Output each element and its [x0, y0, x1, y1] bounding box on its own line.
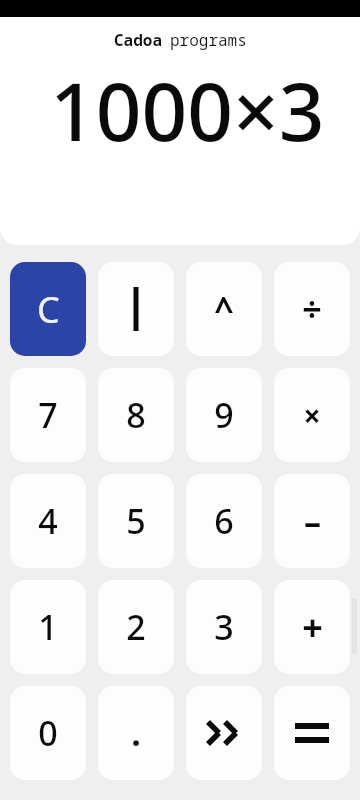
- button[interactable]: Power: [186, 262, 262, 356]
- button[interactable]: Move cursor right: [186, 686, 262, 780]
- button[interactable]: 8: [98, 368, 174, 462]
- button[interactable]: Equals: [274, 686, 350, 780]
- staticText: 4: [38, 498, 58, 544]
- button[interactable]: Plus: [274, 580, 350, 674]
- staticText: 8: [126, 392, 146, 438]
- staticText: C: [37, 285, 60, 334]
- staticText: 2: [126, 604, 146, 650]
- staticText: ^: [214, 286, 234, 332]
- button[interactable]: Minus: [274, 474, 350, 568]
- staticText: 3: [214, 604, 234, 650]
- button[interactable]: 9: [186, 368, 262, 462]
- staticText: 7: [38, 392, 58, 438]
- button[interactable]: Cursor: [98, 262, 174, 356]
- staticText: programs: [170, 29, 247, 51]
- button[interactable]: 2: [98, 580, 174, 674]
- staticText: 0: [38, 710, 58, 756]
- button[interactable]: 4: [10, 474, 86, 568]
- button[interactable]: 6: [186, 474, 262, 568]
- staticText: 1000×3: [50, 55, 325, 164]
- button[interactable]: C: [10, 262, 86, 356]
- button[interactable]: Divide: [274, 262, 350, 356]
- button[interactable]: 5: [98, 474, 174, 568]
- staticText: ×: [303, 395, 321, 436]
- staticText: Cadoa: [114, 29, 163, 51]
- button[interactable]: Multiply: [274, 368, 350, 462]
- staticText: –: [304, 498, 321, 544]
- button[interactable]: 0: [10, 686, 86, 780]
- staticText: +: [302, 603, 323, 652]
- staticText: ÷: [302, 286, 322, 332]
- staticText: 9: [214, 392, 234, 438]
- button[interactable]: Decimal point: [98, 686, 174, 780]
- button[interactable]: 1: [10, 580, 86, 674]
- button[interactable]: 3: [186, 580, 262, 674]
- staticText: .: [131, 710, 141, 756]
- staticText: 1: [38, 604, 58, 650]
- staticText: 6: [214, 498, 234, 544]
- button[interactable]: 7: [10, 368, 86, 462]
- staticText: 5: [126, 498, 146, 544]
